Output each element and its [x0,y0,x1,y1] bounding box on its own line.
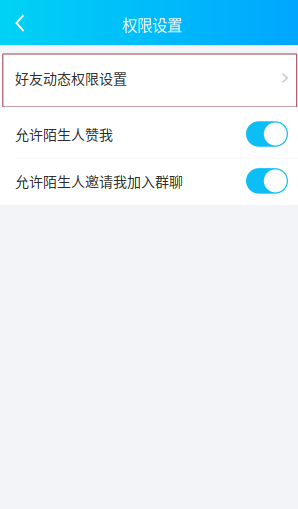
staticText: 好友动态权限设置 [15,68,127,88]
button[interactable]: Back [0,0,40,45]
staticText: 允许陌生人邀请我加入群聊 [15,171,183,191]
button[interactable]: 允许陌生人邀请我加入群聊 [0,159,298,205]
button[interactable]: 好友动态权限设置 [0,54,298,107]
staticText: 允许陌生人赞我 [15,124,113,144]
staticText: 权限设置 [122,13,182,36]
button[interactable]: 允许陌生人赞我 [0,107,298,158]
